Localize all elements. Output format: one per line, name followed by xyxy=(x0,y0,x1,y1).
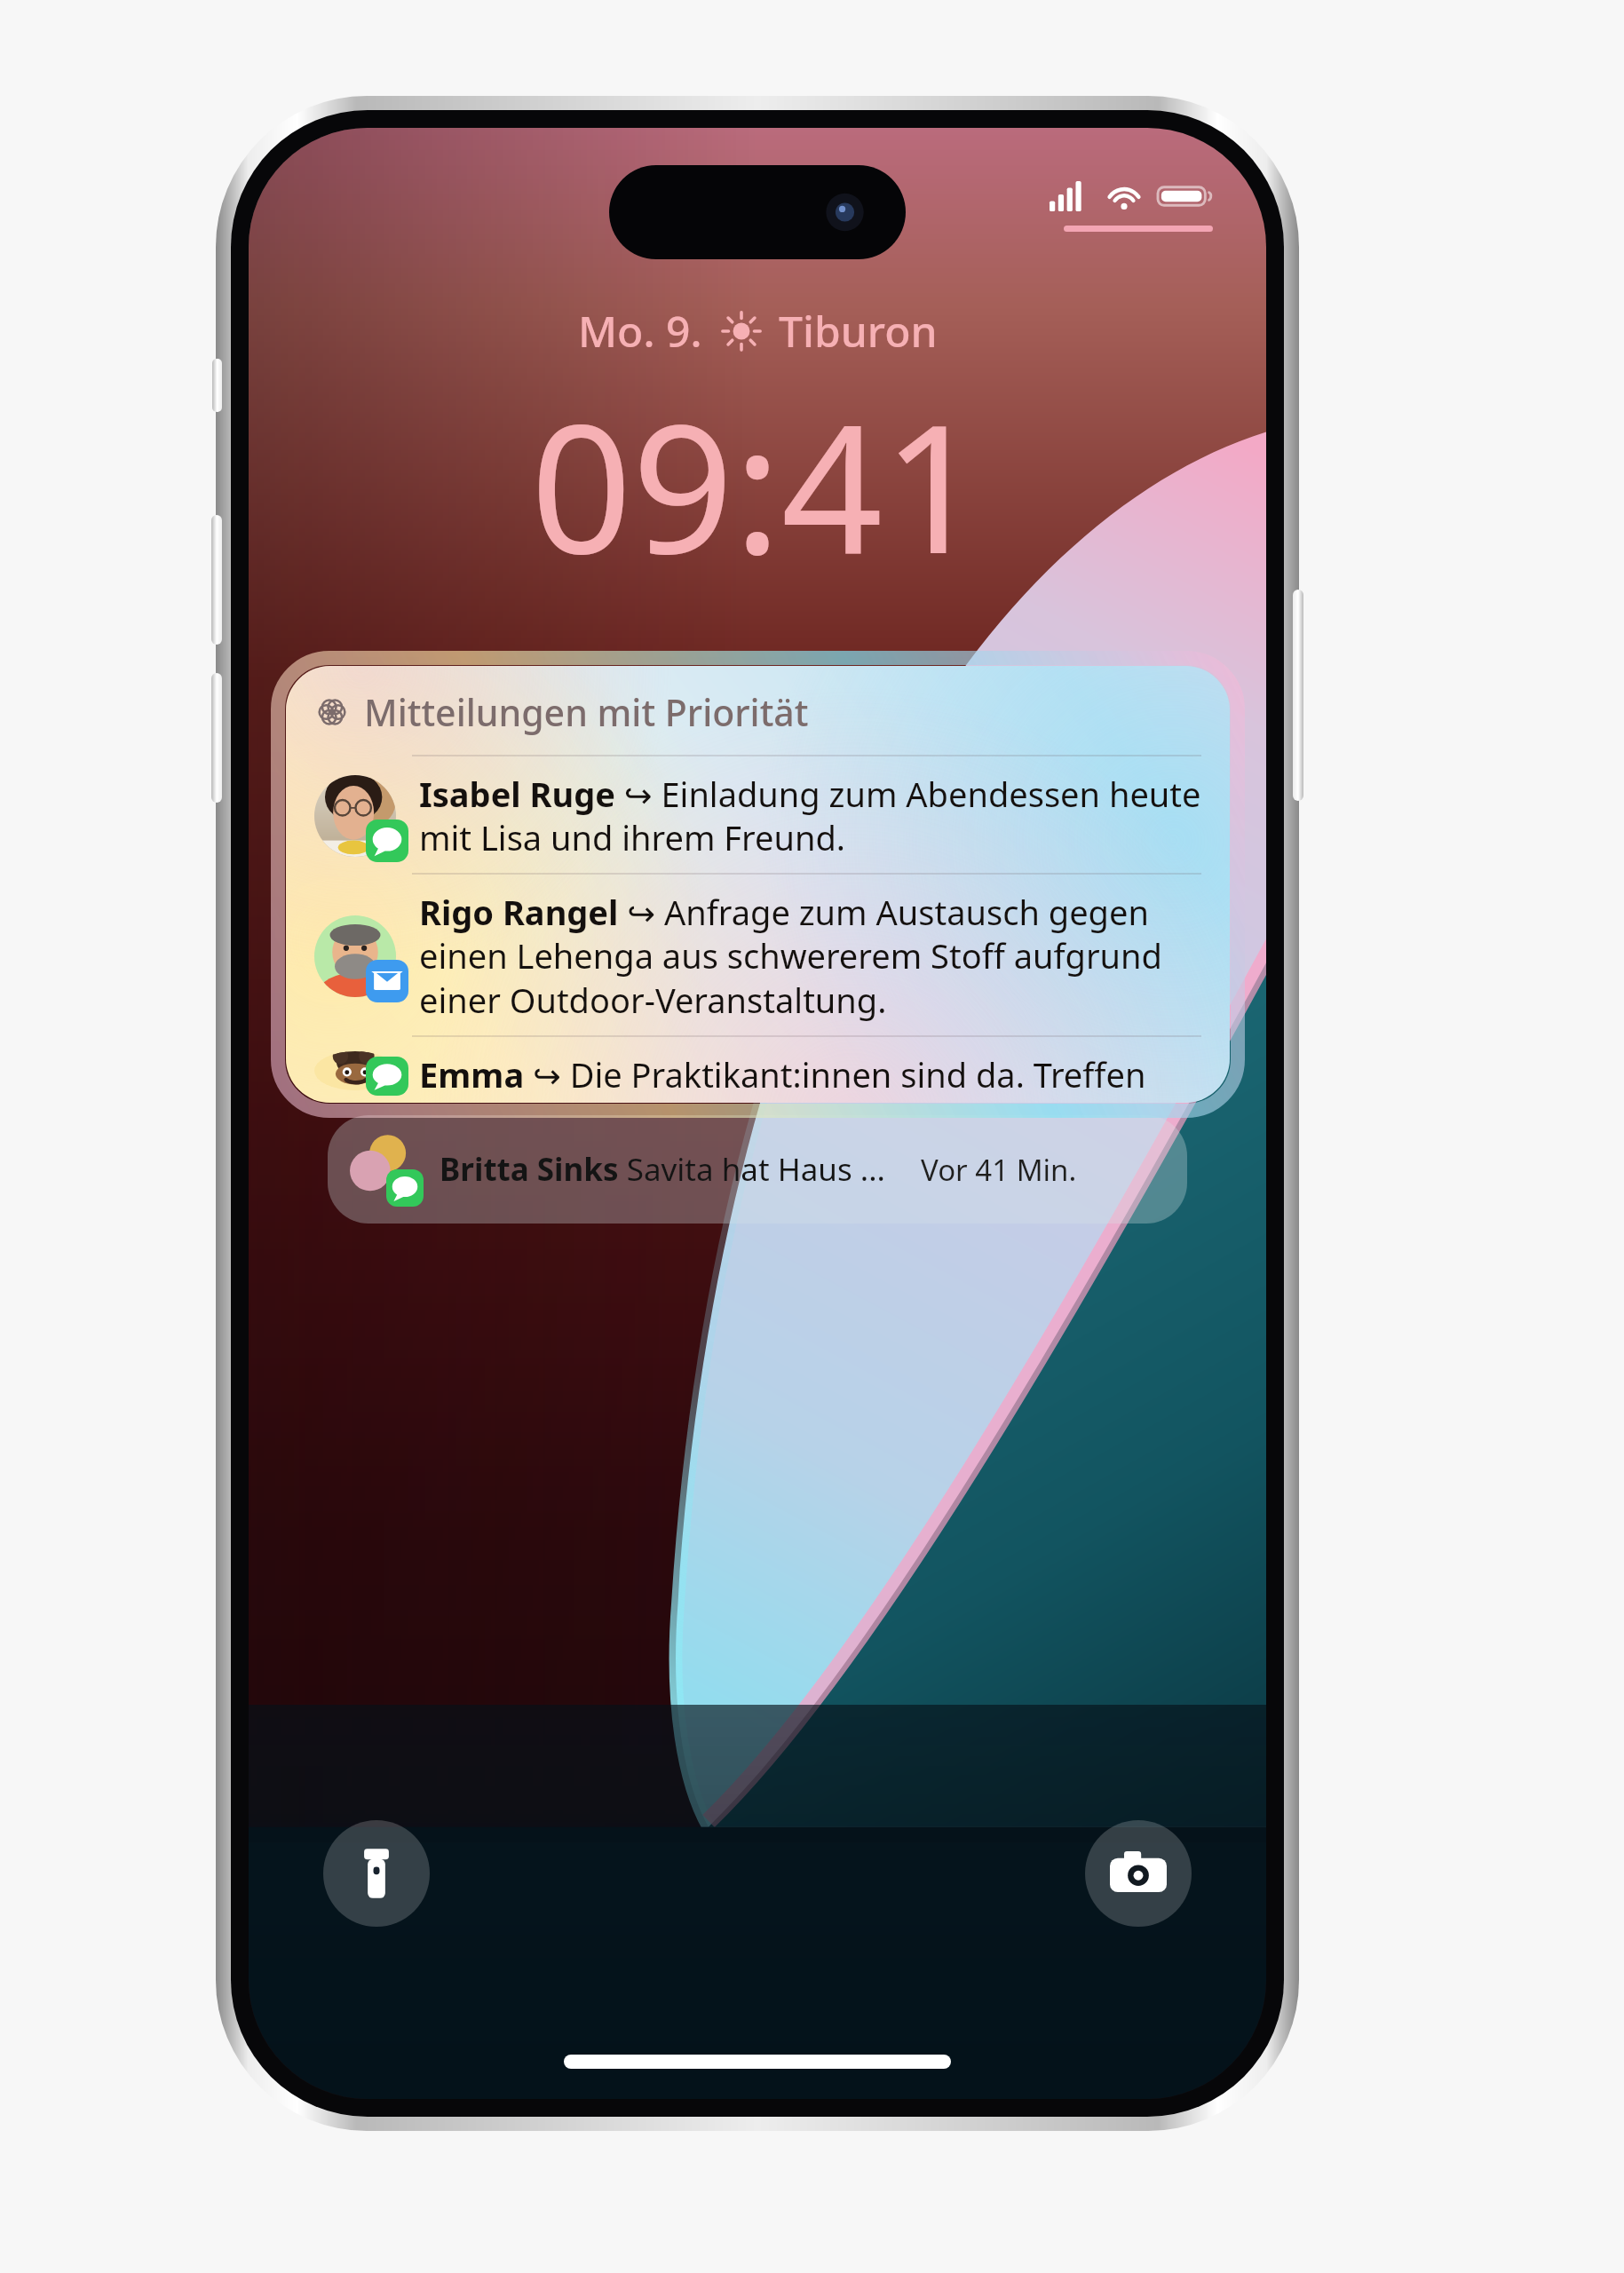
staticText: Emma ↪ Die Praktikant:innen sind da. Tre… xyxy=(419,1051,1205,1090)
button[interactable]: Isabel Ruge ↪ Einladung zum Abendessen h… xyxy=(314,771,1205,860)
staticText: 09:41 xyxy=(530,363,985,605)
button[interactable]: Taschenlampe xyxy=(323,1820,430,1927)
staticText: Rigo Rangel ↪ Anfrage zum Austausch gege… xyxy=(419,889,1205,1023)
staticText: Britta Sinks Savita hat Haus ... xyxy=(440,1148,885,1191)
button[interactable]: Rigo Rangel ↪ Anfrage zum Austausch gege… xyxy=(314,889,1205,1023)
button[interactable]: Kamera xyxy=(1085,1820,1192,1927)
staticText: Mo. 9. xyxy=(578,302,702,360)
button[interactable]: Emma ↪ Die Praktikant:innen sind da. Tre… xyxy=(314,1051,1205,1090)
button[interactable]: Mitteilungen mit Priorität xyxy=(286,666,1230,1103)
staticText: Mitteilungen mit Priorität xyxy=(364,687,809,737)
staticText: Tiburon xyxy=(779,302,938,360)
button[interactable]: Britta Sinks Savita hat Haus ... xyxy=(328,1115,1187,1224)
staticText: Isabel Ruge ↪ Einladung zum Abendessen h… xyxy=(419,771,1205,860)
staticText: Vor 41 Min. xyxy=(921,1150,1077,1190)
